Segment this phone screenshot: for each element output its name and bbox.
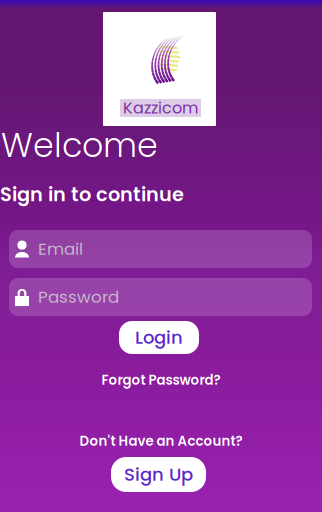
staticText: Don't Have an Account? [79,432,242,450]
staticText: Welcome [1,122,158,169]
button[interactable]: Sign Up [111,457,206,492]
staticText: Sign in to continue [0,181,184,208]
button[interactable]: Login [119,321,199,354]
button[interactable]: Forgot Password? [61,370,261,390]
staticText: Login [135,325,183,350]
staticText: Forgot Password? [101,371,220,389]
staticText: Sign Up [124,462,193,487]
staticText: Kazzicom [123,97,198,119]
staticText: Password [38,285,119,309]
staticText: Email [38,237,83,261]
